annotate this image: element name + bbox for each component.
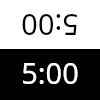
- staticText: 5:00: [21, 53, 79, 92]
- button[interactable]: 5:00: [0, 0, 100, 49]
- staticText: 5:00: [21, 6, 79, 45]
- button[interactable]: 5:00: [0, 49, 100, 100]
